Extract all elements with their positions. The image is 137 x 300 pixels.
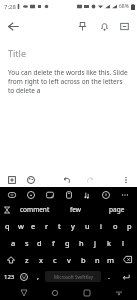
- button[interactable]: Recents: [80, 286, 94, 300]
- button[interactable]: comment: [14, 202, 55, 217]
- button[interactable]: x: [34, 251, 48, 268]
- staticText: u: [85, 221, 90, 231]
- button[interactable]: j: [88, 234, 102, 251]
- staticText: d: [37, 238, 42, 248]
- button[interactable]: Delete: [118, 251, 136, 268]
- button[interactable]: Hide keyboard: [112, 286, 126, 300]
- button[interactable]: page: [96, 202, 137, 217]
- staticText: n: [95, 255, 100, 265]
- button[interactable]: Expand suggestions: [0, 202, 14, 217]
- staticText: ,: [37, 272, 39, 282]
- button[interactable]: Pin: [71, 15, 93, 37]
- button[interactable]: t: [53, 217, 66, 234]
- button[interactable]: Translate: [80, 188, 94, 202]
- button[interactable]: s: [20, 234, 33, 251]
- button[interactable]: d: [33, 234, 46, 251]
- staticText: 123: [4, 273, 15, 281]
- button[interactable]: Back: [0, 13, 26, 39]
- button[interactable]: n: [90, 251, 104, 268]
- button[interactable]: f: [46, 234, 60, 251]
- staticText: .: [108, 272, 110, 282]
- button[interactable]: More: [118, 188, 132, 202]
- button[interactable]: .: [102, 268, 115, 285]
- staticText: page: [109, 205, 125, 214]
- staticText: h: [79, 238, 84, 248]
- staticText: q: [5, 221, 10, 231]
- button[interactable]: c: [48, 251, 62, 268]
- button[interactable]: e: [27, 217, 40, 234]
- button[interactable]: Back: [17, 286, 31, 300]
- button[interactable]: Home: [48, 286, 62, 300]
- staticText: You can delete the words like this. Slid…: [8, 68, 129, 95]
- button[interactable]: Settings: [99, 188, 113, 202]
- staticText: Title: [8, 47, 26, 59]
- staticText: p: [127, 221, 132, 231]
- staticText: b: [81, 255, 86, 265]
- button[interactable]: a: [7, 234, 20, 251]
- button[interactable]: w: [14, 217, 27, 234]
- staticText: o: [113, 221, 118, 231]
- button[interactable]: Draw: [24, 173, 37, 186]
- button[interactable]: Keyboard modes: [5, 188, 19, 202]
- button[interactable]: l: [116, 234, 130, 251]
- staticText: g: [65, 238, 70, 248]
- staticText: Microsoft SwiftKey: [54, 274, 93, 280]
- button[interactable]: few: [55, 202, 96, 217]
- button[interactable]: Enter: [115, 268, 136, 285]
- button[interactable]: Add: [5, 173, 18, 186]
- button[interactable]: ,: [31, 268, 44, 285]
- staticText: z: [25, 255, 29, 265]
- button[interactable]: z: [20, 251, 34, 268]
- button[interactable]: Reminder: [93, 15, 115, 37]
- button[interactable]: Stickers: [24, 188, 38, 202]
- button[interactable]: Redo: [83, 173, 96, 186]
- button[interactable]: p: [122, 217, 136, 234]
- staticText: comment: [20, 205, 50, 214]
- staticText: r: [45, 221, 49, 231]
- button[interactable]: k: [102, 234, 116, 251]
- button[interactable]: More options: [119, 173, 132, 186]
- button[interactable]: Symbols: [1, 268, 17, 285]
- button[interactable]: h: [74, 234, 88, 251]
- staticText: c: [53, 255, 57, 265]
- button[interactable]: Themes: [62, 188, 76, 202]
- button[interactable]: Space: [45, 271, 101, 282]
- button[interactable]: Clipboard: [43, 188, 57, 202]
- staticText: e: [31, 221, 36, 231]
- button[interactable]: r: [40, 217, 53, 234]
- staticText: t: [58, 221, 61, 231]
- button[interactable]: o: [108, 217, 122, 234]
- button[interactable]: Archive: [115, 15, 134, 37]
- button[interactable]: b: [76, 251, 90, 268]
- button[interactable]: q: [1, 217, 14, 234]
- staticText: x: [39, 255, 43, 265]
- staticText: w: [18, 221, 24, 231]
- staticText: few: [70, 205, 81, 214]
- staticText: l: [122, 238, 124, 248]
- staticText: i: [100, 221, 102, 231]
- staticText: f: [52, 238, 55, 248]
- button[interactable]: u: [80, 217, 94, 234]
- staticText: m: [107, 255, 115, 265]
- button[interactable]: Undo: [60, 173, 73, 186]
- staticText: s: [25, 238, 29, 248]
- button[interactable]: y: [66, 217, 80, 234]
- button[interactable]: i: [94, 217, 108, 234]
- staticText: a: [11, 238, 16, 248]
- button[interactable]: Emoji: [17, 268, 31, 285]
- button[interactable]: v: [62, 251, 76, 268]
- staticText: 68%: [119, 3, 129, 10]
- staticText: y: [71, 221, 75, 231]
- button[interactable]: g: [60, 234, 74, 251]
- staticText: v: [67, 255, 71, 265]
- staticText: j: [94, 238, 96, 248]
- button[interactable]: Shift: [1, 251, 20, 268]
- staticText: k: [107, 238, 112, 248]
- staticText: 7:28: [4, 3, 16, 11]
- button[interactable]: m: [104, 251, 118, 268]
